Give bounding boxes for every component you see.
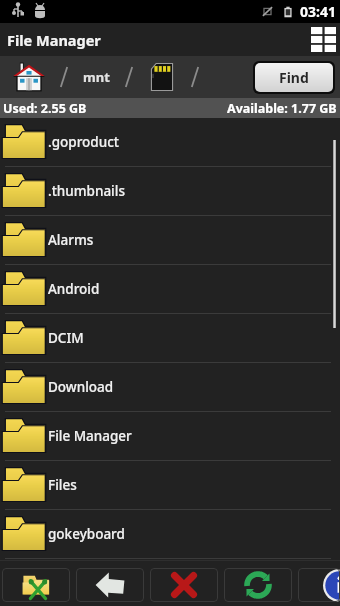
button[interactable]: Android bbox=[0, 265, 340, 313]
staticText: 03:41 bbox=[300, 2, 336, 21]
staticText: Download bbox=[48, 378, 114, 396]
button[interactable]: gokeyboard bbox=[0, 510, 340, 558]
button[interactable]: Download bbox=[0, 363, 340, 411]
button[interactable]: Find bbox=[255, 63, 333, 92]
staticText: .thumbnails bbox=[48, 182, 125, 200]
staticText: Available: 1.77 GB bbox=[227, 100, 337, 117]
staticText: DCIM bbox=[48, 329, 84, 347]
button[interactable]: SD card bbox=[134, 56, 190, 98]
staticText: Files bbox=[48, 476, 77, 494]
button[interactable]: Alarms bbox=[0, 216, 340, 264]
button[interactable]: Home bbox=[13, 61, 45, 93]
staticText: File Manager bbox=[48, 427, 132, 445]
button[interactable]: mnt bbox=[69, 56, 124, 98]
button[interactable]: Back bbox=[76, 568, 144, 602]
staticText: gokeyboard bbox=[48, 525, 125, 543]
staticText: Alarms bbox=[48, 231, 94, 249]
staticText: Find bbox=[279, 68, 309, 87]
button[interactable]: Cut bbox=[2, 568, 70, 602]
staticText: Used: 2.55 GB bbox=[3, 100, 87, 117]
button[interactable]: .thumbnails bbox=[0, 167, 340, 215]
button[interactable]: Files bbox=[0, 461, 340, 509]
button[interactable]: Refresh bbox=[224, 568, 292, 602]
staticText: .goproduct bbox=[48, 133, 119, 151]
button[interactable]: DCIM bbox=[0, 314, 340, 362]
button[interactable]: Delete bbox=[150, 568, 218, 602]
button[interactable]: Grid view bbox=[307, 23, 340, 56]
staticText: File Manager bbox=[7, 30, 101, 50]
button[interactable]: File Manager bbox=[0, 412, 340, 460]
staticText: mnt bbox=[83, 68, 110, 86]
staticText: Android bbox=[48, 280, 100, 298]
button[interactable]: Info bbox=[298, 568, 340, 602]
button[interactable]: .goproduct bbox=[0, 118, 340, 166]
